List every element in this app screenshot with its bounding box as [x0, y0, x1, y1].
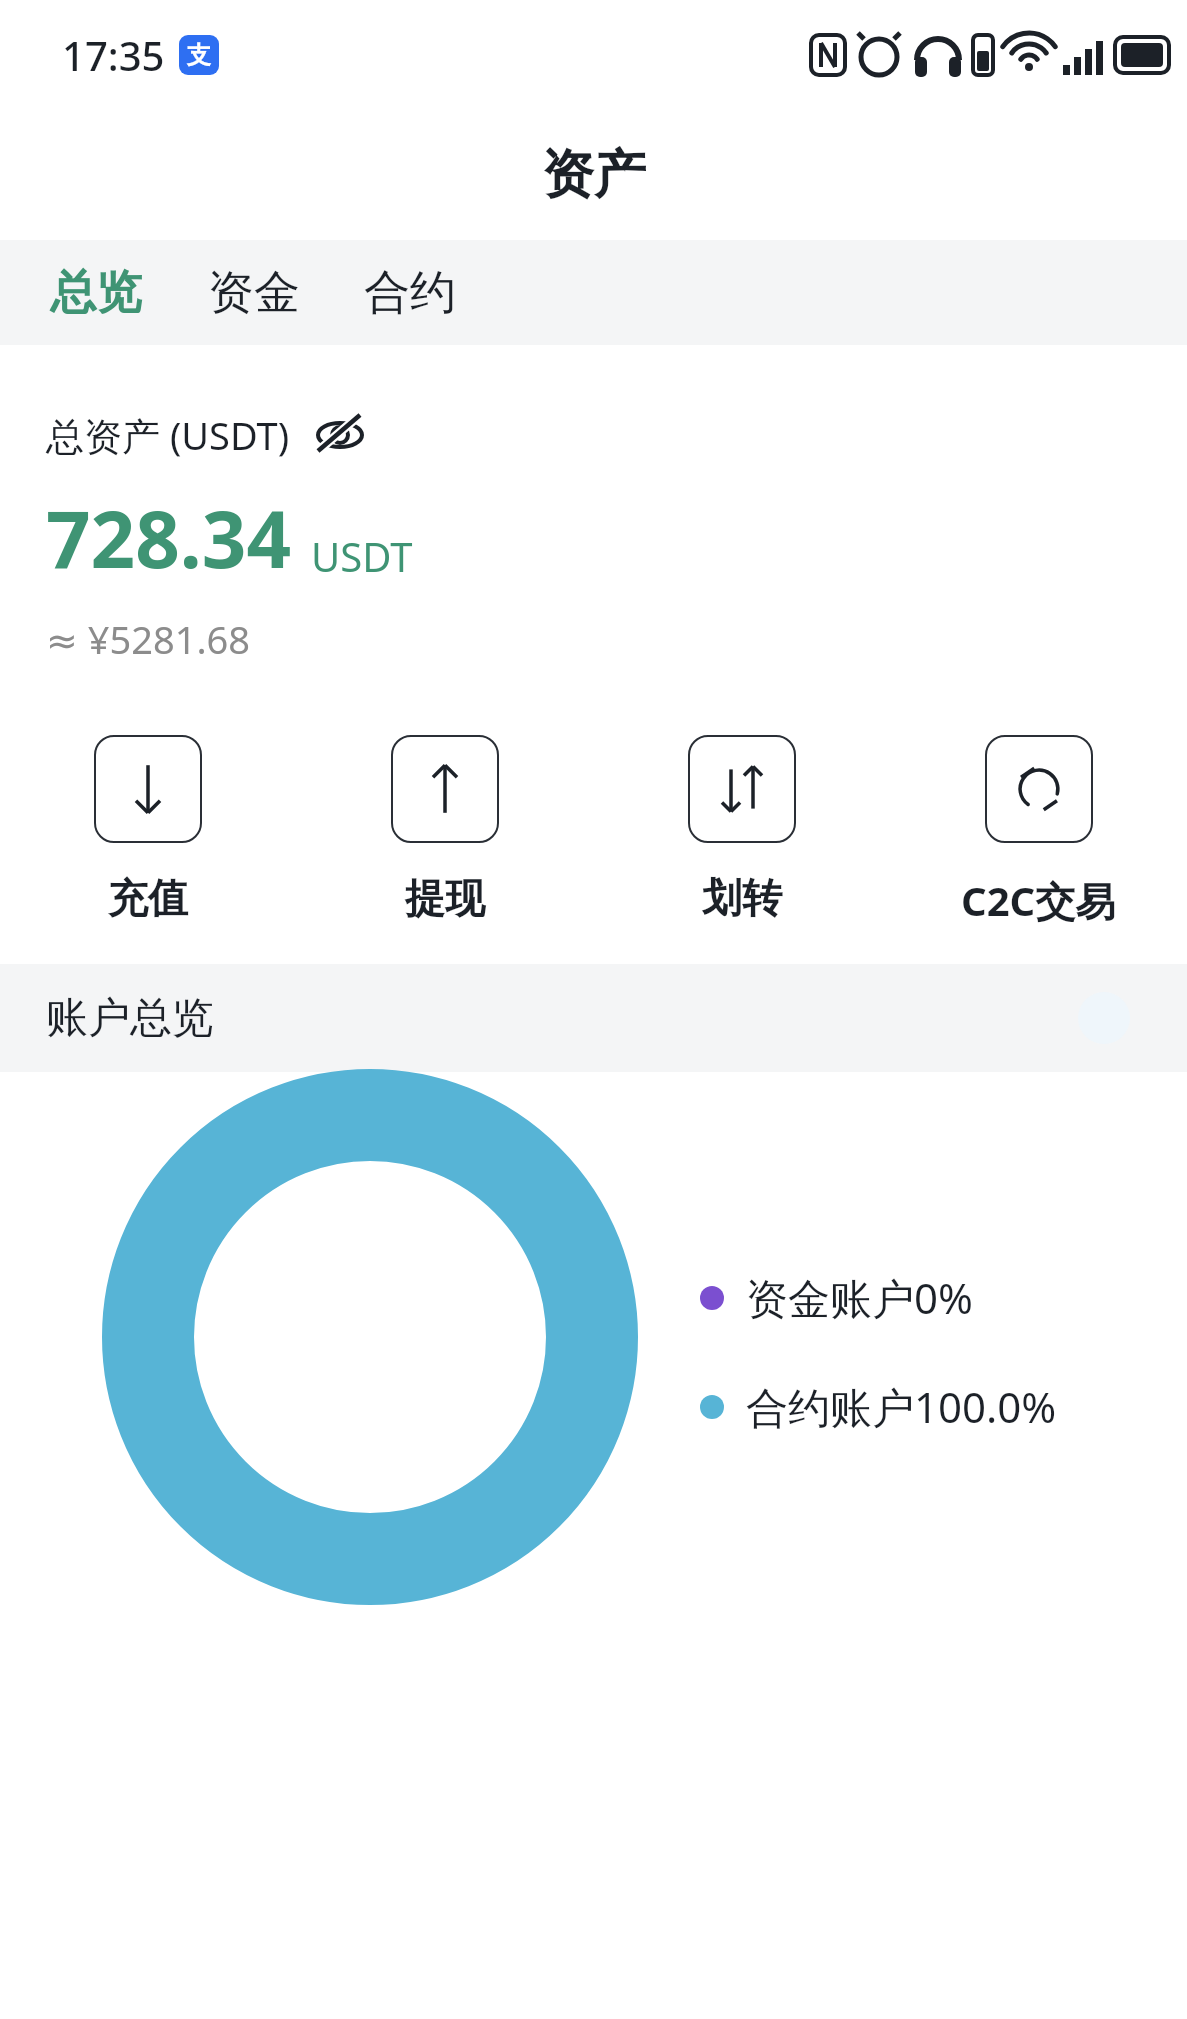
staticText: 资金账户0%: [746, 1269, 973, 1326]
button[interactable]: 资金: [204, 254, 304, 332]
staticText: 支: [187, 40, 211, 70]
staticText: USDT: [311, 529, 413, 583]
staticText: 17:35: [62, 28, 165, 82]
button[interactable]: 资金账户0%: [700, 1269, 973, 1326]
staticText: 总览: [50, 264, 142, 322]
staticText: 划转: [702, 873, 782, 923]
button[interactable]: 划转: [678, 729, 806, 929]
staticText: 资产: [542, 142, 646, 208]
button[interactable]: Hide balance: [312, 407, 368, 463]
button[interactable]: C2C交易: [951, 729, 1126, 934]
staticText: 合约: [364, 264, 456, 322]
staticText: 提现: [405, 873, 485, 923]
button[interactable]: 合约: [360, 254, 460, 332]
staticText: 资金: [208, 264, 300, 322]
staticText: C2C交易: [961, 873, 1116, 928]
button[interactable]: 提现: [381, 729, 509, 929]
button[interactable]: 总览: [46, 254, 146, 332]
button[interactable]: 充值: [84, 729, 212, 929]
staticText: 总资产 (USDT): [46, 409, 290, 461]
staticText: 728.34: [46, 485, 291, 591]
staticText: 合约账户100.0%: [746, 1378, 1057, 1435]
staticText: 充值: [108, 873, 188, 923]
staticText: ≈ ¥5281.68: [46, 613, 251, 665]
staticText: 账户总览: [46, 992, 214, 1045]
button[interactable]: 合约账户100.0%: [700, 1378, 1057, 1435]
